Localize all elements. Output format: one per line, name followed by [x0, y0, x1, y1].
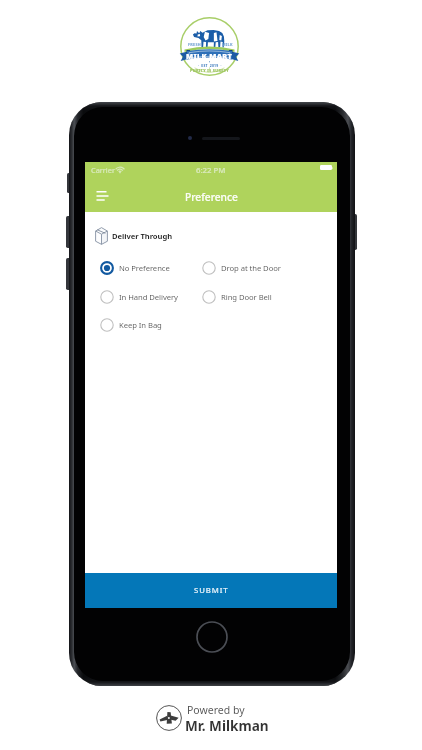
staticText: · EST 2019 ·: [198, 63, 222, 68]
button[interactable]: Ring Door Bell: [202, 285, 297, 309]
staticText: Mr. Milkman: [185, 716, 269, 735]
staticText: Deliver Through: [112, 231, 173, 241]
staticText: MILK MART: [186, 51, 233, 61]
button[interactable]: Open navigation menu: [91, 185, 113, 207]
staticText: FRESH: [188, 42, 201, 47]
staticText: Preference: [185, 190, 238, 204]
staticText: In Hand Delivery: [119, 292, 178, 302]
button[interactable]: In Hand Delivery: [100, 285, 195, 309]
button[interactable]: SUBMIT: [85, 573, 337, 608]
staticText: Powered by: [187, 703, 245, 717]
staticText: PURITY IS SURETY: [190, 68, 230, 73]
staticText: 6:22 PM: [196, 165, 226, 176]
staticText: MILK: [222, 42, 233, 47]
staticText: No Preference: [119, 263, 170, 273]
staticText: Keep In Bag: [119, 320, 162, 330]
staticText: SUBMIT: [194, 585, 229, 596]
staticText: Ring Door Bell: [221, 292, 272, 302]
button[interactable]: Keep In Bag: [100, 313, 195, 337]
button[interactable]: No Preference: [100, 256, 195, 280]
button[interactable]: Drop at the Door: [202, 256, 297, 280]
staticText: Carrier: [91, 165, 115, 175]
staticText: Drop at the Door: [221, 263, 281, 273]
